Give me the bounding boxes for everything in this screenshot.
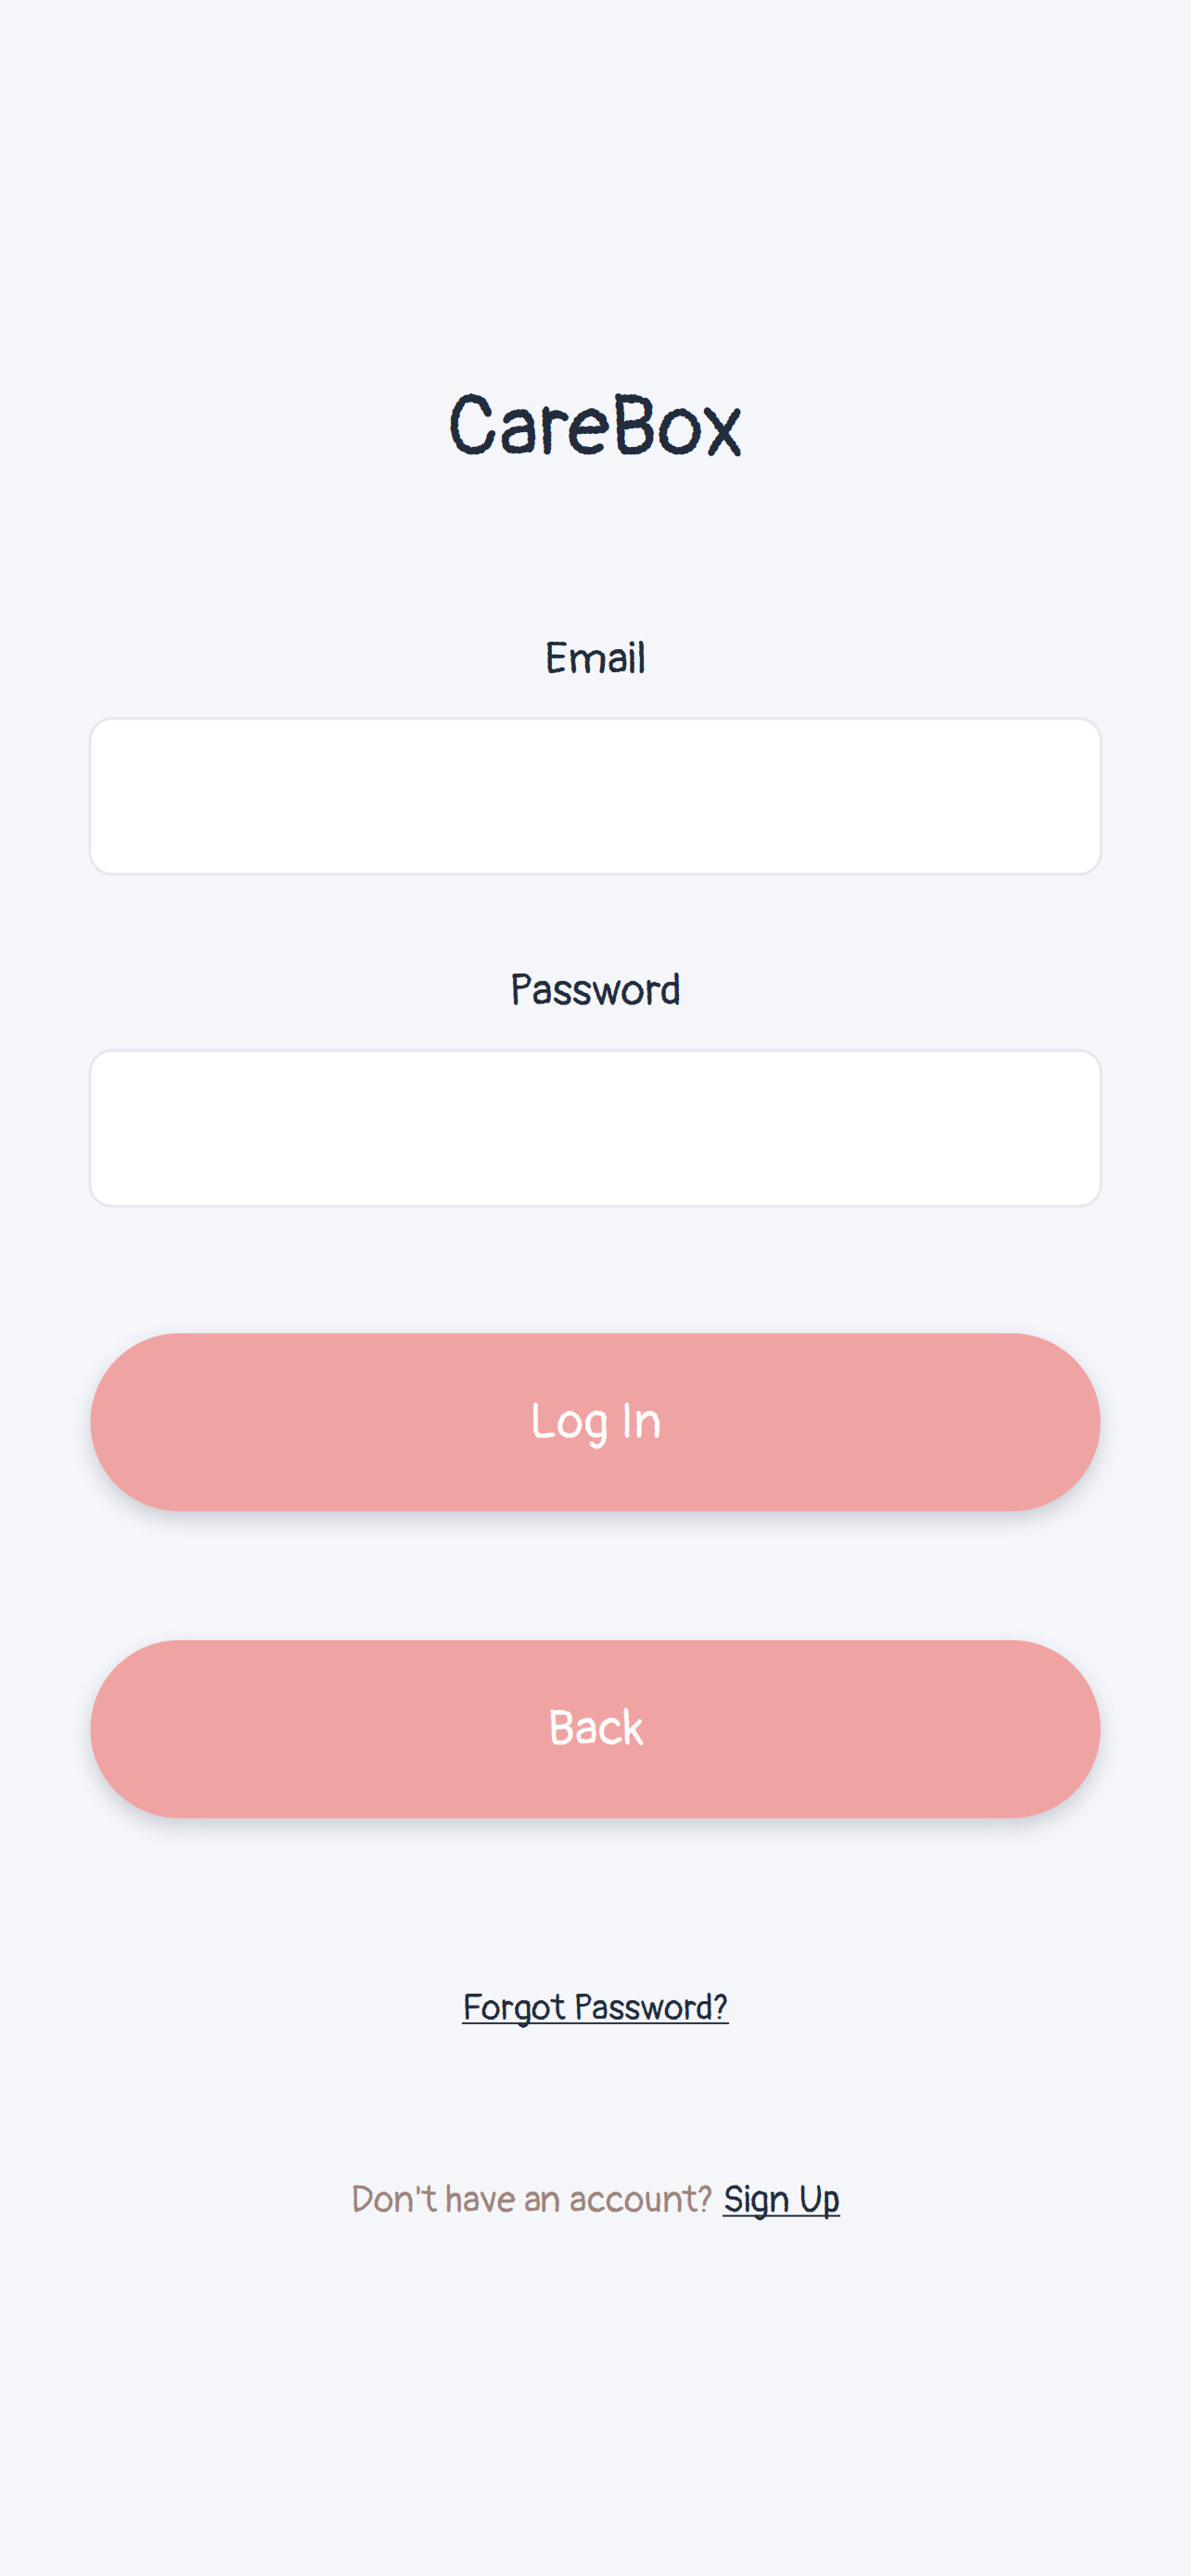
button[interactable]: Don't have an account? [351,2177,840,2224]
staticText: Log In [529,1391,662,1453]
staticText: Email [544,631,647,687]
button[interactable]: Back [90,1640,1101,1818]
button[interactable]: Log In [90,1333,1101,1511]
staticText: Don't have an account? [351,2177,723,2224]
staticText: Sign Up [723,2177,840,2224]
staticText: Password [509,963,682,1019]
staticText: Forgot Password? [462,1986,729,2031]
staticText: CareBox [446,375,745,481]
button[interactable]: Forgot Password? [462,1986,729,2031]
staticText: Back [547,1698,644,1760]
